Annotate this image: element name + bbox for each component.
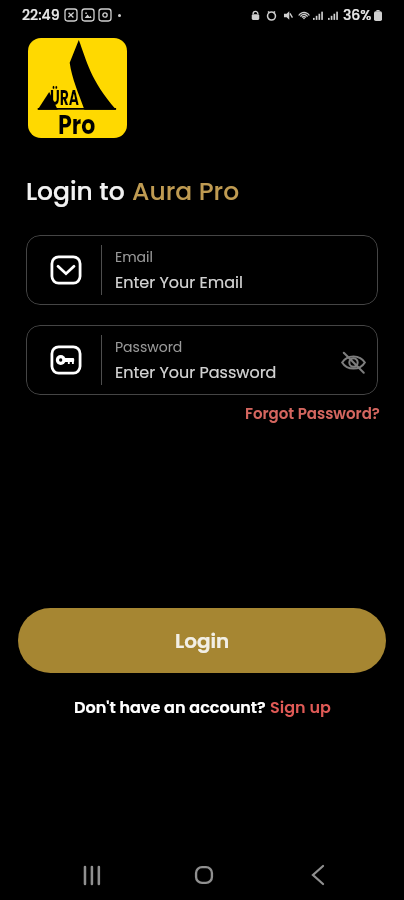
button[interactable]: Password bbox=[26, 325, 378, 395]
button[interactable]: Sign up bbox=[270, 696, 331, 718]
button[interactable]: Back bbox=[292, 852, 344, 898]
staticText: ÜRA bbox=[50, 83, 79, 113]
staticText: Password bbox=[115, 337, 183, 357]
staticText: Forgot Password? bbox=[245, 403, 380, 424]
button[interactable]: Recent apps bbox=[66, 852, 118, 898]
staticText: Pro bbox=[58, 106, 96, 138]
staticText: Aura Pro bbox=[132, 174, 240, 209]
staticText: Don't have an account? bbox=[74, 696, 270, 718]
button[interactable]: Forgot Password? bbox=[245, 403, 380, 424]
staticText: Email bbox=[115, 247, 153, 267]
staticText: Enter Your Email bbox=[115, 271, 243, 293]
staticText: Enter Your Password bbox=[115, 361, 277, 383]
staticText: 36% bbox=[343, 5, 372, 25]
button[interactable]: Email bbox=[26, 235, 378, 305]
staticText: Sign up bbox=[270, 696, 331, 718]
staticText: Login to bbox=[26, 174, 132, 209]
staticText: 22:49 bbox=[22, 5, 60, 25]
button[interactable]: Home bbox=[178, 852, 230, 898]
button[interactable]: Login bbox=[18, 608, 386, 673]
staticText: Login bbox=[175, 627, 230, 655]
button[interactable]: Show password bbox=[337, 346, 369, 378]
